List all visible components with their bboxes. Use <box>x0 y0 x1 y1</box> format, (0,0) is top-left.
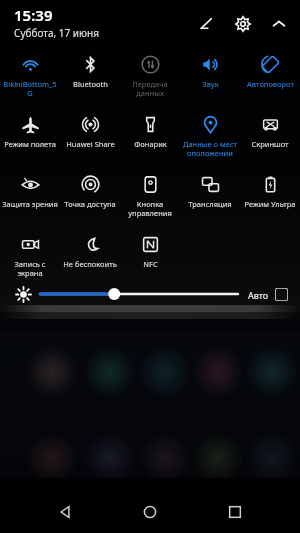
staticText: Кнопка управления <box>121 199 179 218</box>
button[interactable]: Режим Ультра <box>240 167 300 227</box>
button[interactable]: Автоповорот <box>240 47 300 107</box>
button[interactable]: Точка доступа <box>60 167 120 227</box>
staticText: Huawei Share <box>66 139 115 149</box>
staticText: BikiniBottom_5G <box>1 79 59 98</box>
button[interactable]: Brightness <box>10 283 36 305</box>
button[interactable]: Recent apps <box>215 492 255 532</box>
staticText: Авто <box>248 289 269 301</box>
button[interactable]: Collapse <box>268 13 290 35</box>
button[interactable]: NFC <box>120 227 180 283</box>
button[interactable]: Не беспокоить <box>60 227 120 283</box>
button[interactable]: Запись с экрана <box>0 227 60 283</box>
button[interactable]: Фонарик <box>120 107 180 167</box>
button[interactable]: Скриншот <box>240 107 300 167</box>
button[interactable]: Трансляция <box>180 167 240 227</box>
staticText: Трансляция <box>188 199 232 209</box>
staticText: NFC <box>143 259 158 269</box>
button[interactable]: Huawei Share <box>60 107 120 167</box>
button[interactable]: BikiniBottom_5G <box>0 47 60 107</box>
button[interactable]: Brightness slider <box>40 283 238 305</box>
button[interactable]: Данные о местоположении <box>180 107 240 167</box>
button[interactable]: Home <box>130 492 170 532</box>
button[interactable]: Back <box>45 492 85 532</box>
button[interactable]: Передача данных <box>120 47 180 107</box>
staticText: Автоповорот <box>247 79 294 89</box>
button[interactable]: Авто <box>246 284 290 305</box>
staticText: Bluetooth <box>73 79 108 89</box>
button[interactable]: Settings <box>232 13 254 35</box>
staticText: Точка доступа <box>64 199 116 209</box>
button[interactable]: Режим полета <box>0 107 60 167</box>
staticText: 15:39 <box>14 5 53 25</box>
staticText: Защита зрения <box>2 199 58 209</box>
button[interactable]: Кнопка управления <box>120 167 180 227</box>
button[interactable]: Edit quick settings <box>196 13 218 35</box>
staticText: Фонарик <box>134 139 167 149</box>
button[interactable]: Защита зрения <box>0 167 60 227</box>
staticText: Режим полета <box>4 139 56 149</box>
button[interactable]: Bluetooth <box>60 47 120 107</box>
staticText: Данные о местоположении <box>181 139 239 158</box>
staticText: Режим Ультра <box>244 199 296 209</box>
staticText: Суббота, 17 июня <box>14 26 99 40</box>
staticText: Звук <box>202 79 219 89</box>
staticText: Запись с экрана <box>1 259 59 278</box>
staticText: Не беспокоить <box>63 259 117 269</box>
staticText: Передача данных <box>121 79 179 98</box>
staticText: Скриншот <box>251 139 289 149</box>
button[interactable]: Звук <box>180 47 240 107</box>
